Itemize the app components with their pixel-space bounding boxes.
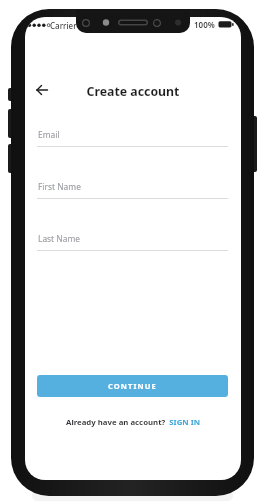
staticText: Create account xyxy=(25,83,241,100)
button[interactable]: CONTINUE xyxy=(37,375,228,397)
button[interactable]: Already have an account? SIGN IN xyxy=(25,417,241,428)
staticText: Already have an account? SIGN IN xyxy=(66,417,201,428)
staticText: Email xyxy=(38,129,60,140)
button[interactable]: Email xyxy=(25,123,241,159)
button[interactable]: First Name xyxy=(25,175,241,211)
button[interactable]: Last Name xyxy=(25,227,241,263)
staticText: Last Name xyxy=(38,233,80,244)
staticText: 100% xyxy=(194,19,215,30)
staticText: CONTINUE xyxy=(108,381,157,391)
staticText: Carrier xyxy=(50,20,77,31)
staticText: First Name xyxy=(38,181,81,192)
button[interactable] xyxy=(33,81,51,99)
